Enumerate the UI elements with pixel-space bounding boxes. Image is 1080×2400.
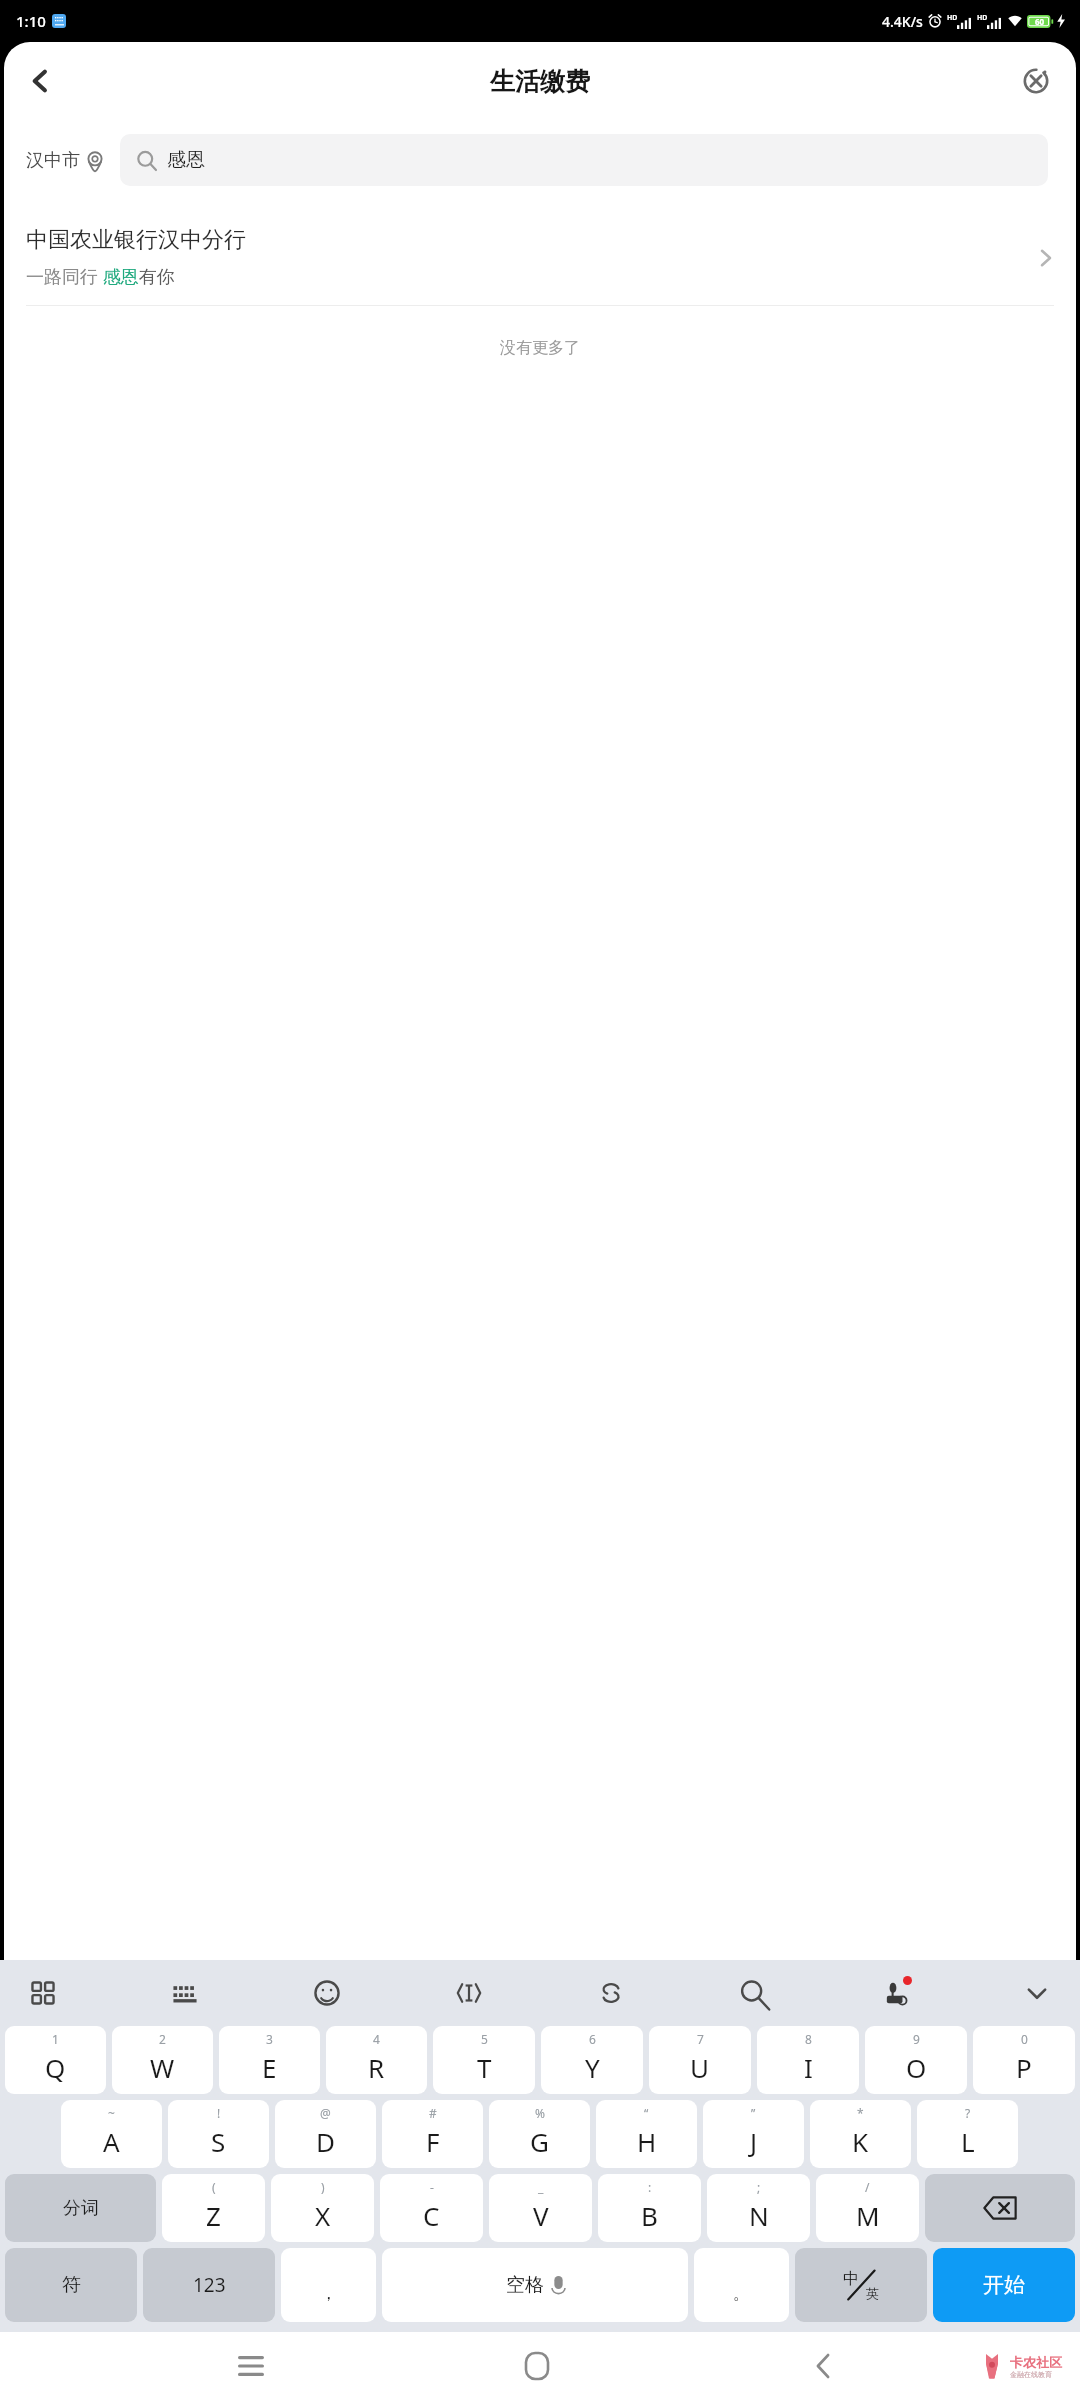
- staticText: D: [316, 2124, 335, 2159]
- button[interactable]: 空格: [382, 2248, 688, 2322]
- button[interactable]: 7: [649, 2026, 751, 2094]
- button[interactable]: 3: [219, 2026, 320, 2094]
- button[interactable]: 1: [5, 2026, 106, 2094]
- staticText: F: [426, 2124, 440, 2159]
- staticText: *: [857, 2105, 864, 2121]
- staticText: #: [429, 2105, 437, 2121]
- button[interactable]: Emoji: [310, 1976, 344, 2010]
- staticText: Q: [45, 2050, 66, 2085]
- staticText: 分词: [63, 2197, 99, 2220]
- staticText: V: [533, 2198, 549, 2233]
- staticText: 4.4K/s: [882, 12, 923, 31]
- staticText: 8: [805, 2031, 812, 2047]
- button[interactable]: ;: [707, 2174, 810, 2242]
- button[interactable]: Back: [12, 53, 68, 109]
- staticText: I: [804, 2050, 813, 2085]
- button[interactable]: #: [382, 2100, 483, 2168]
- button[interactable]: 9: [865, 2026, 967, 2094]
- button[interactable]: Recents: [216, 2332, 286, 2400]
- button[interactable]: Grid: [26, 1976, 60, 2010]
- button[interactable]: Home: [502, 2332, 572, 2400]
- button[interactable]: Search: [736, 1976, 770, 2010]
- staticText: 汉中市: [26, 149, 80, 172]
- button[interactable]: Keyboard layout: [168, 1976, 202, 2010]
- button[interactable]: ?: [917, 2100, 1018, 2168]
- button[interactable]: 4: [326, 2026, 427, 2094]
- button[interactable]: 6: [541, 2026, 643, 2094]
- button[interactable]: _: [489, 2174, 592, 2242]
- staticText: ?: [965, 2105, 971, 2121]
- button[interactable]: ”: [703, 2100, 804, 2168]
- button[interactable]: :: [598, 2174, 701, 2242]
- button[interactable]: -: [380, 2174, 483, 2242]
- button[interactable]: @: [275, 2100, 376, 2168]
- staticText: 符: [62, 2273, 81, 2297]
- button[interactable]: 感恩: [120, 134, 1048, 186]
- button[interactable]: 中国农业银行汉中分行: [4, 208, 1076, 306]
- staticText: “: [644, 2105, 649, 2121]
- staticText: 开始: [983, 2272, 1025, 2298]
- staticText: 感恩: [167, 148, 205, 172]
- staticText: 1: [52, 2031, 59, 2047]
- button[interactable]: 汉中市: [26, 143, 106, 178]
- button[interactable]: ，: [281, 2248, 376, 2322]
- staticText: ，: [320, 2283, 337, 2304]
- button[interactable]: Backspace: [925, 2174, 1075, 2242]
- staticText: N: [749, 2198, 769, 2233]
- staticText: 空格: [506, 2273, 544, 2297]
- button[interactable]: Cursor: [452, 1976, 486, 2010]
- button[interactable]: %: [489, 2100, 590, 2168]
- staticText: U: [690, 2050, 710, 2085]
- staticText: 生活缴费: [490, 66, 590, 97]
- button[interactable]: Voice: [878, 1976, 912, 2010]
- staticText: H: [637, 2124, 657, 2159]
- staticText: ”: [751, 2105, 756, 2121]
- staticText: 6: [589, 2031, 596, 2047]
- staticText: 3: [266, 2031, 273, 2047]
- staticText: Y: [585, 2050, 600, 2085]
- staticText: !: [217, 2105, 221, 2121]
- button[interactable]: Clip: [594, 1976, 628, 2010]
- staticText: M: [856, 2198, 880, 2233]
- button[interactable]: ): [271, 2174, 374, 2242]
- button[interactable]: ~: [61, 2100, 162, 2168]
- button[interactable]: *: [810, 2100, 911, 2168]
- staticText: A: [103, 2124, 120, 2159]
- staticText: 60: [1035, 16, 1045, 27]
- button[interactable]: 8: [757, 2026, 859, 2094]
- button[interactable]: Switch Chinese English: [795, 2248, 927, 2322]
- staticText: 9: [913, 2031, 920, 2047]
- staticText: B: [641, 2198, 658, 2233]
- staticText: P: [1016, 2050, 1032, 2085]
- button[interactable]: 2: [112, 2026, 213, 2094]
- staticText: @: [320, 2105, 331, 2121]
- staticText: R: [368, 2050, 385, 2085]
- button[interactable]: Close: [1010, 55, 1062, 107]
- button[interactable]: “: [596, 2100, 697, 2168]
- button[interactable]: (: [162, 2174, 265, 2242]
- button[interactable]: 开始: [933, 2248, 1075, 2322]
- button[interactable]: !: [168, 2100, 269, 2168]
- staticText: 0: [1021, 2031, 1028, 2047]
- staticText: -: [430, 2179, 434, 2195]
- staticText: X: [315, 2198, 331, 2233]
- staticText: ): [321, 2179, 325, 2195]
- button[interactable]: 分词: [5, 2174, 156, 2242]
- staticText: %: [535, 2105, 545, 2121]
- staticText: O: [906, 2050, 927, 2085]
- staticText: 1:10: [16, 11, 46, 31]
- button[interactable]: 123: [143, 2248, 275, 2322]
- staticText: ~: [108, 2105, 115, 2121]
- button[interactable]: Back: [788, 2332, 858, 2400]
- staticText: L: [961, 2124, 975, 2159]
- staticText: 卡农社区: [1010, 2354, 1062, 2370]
- button[interactable]: 5: [433, 2026, 535, 2094]
- staticText: /: [865, 2179, 870, 2195]
- button[interactable]: 0: [973, 2026, 1075, 2094]
- staticText: 2: [159, 2031, 166, 2047]
- button[interactable]: 。: [694, 2248, 789, 2322]
- staticText: 金融在线教育: [1010, 2370, 1052, 2379]
- button[interactable]: Hide keyboard: [1020, 1976, 1054, 2010]
- button[interactable]: 符: [5, 2248, 137, 2322]
- button[interactable]: /: [816, 2174, 919, 2242]
